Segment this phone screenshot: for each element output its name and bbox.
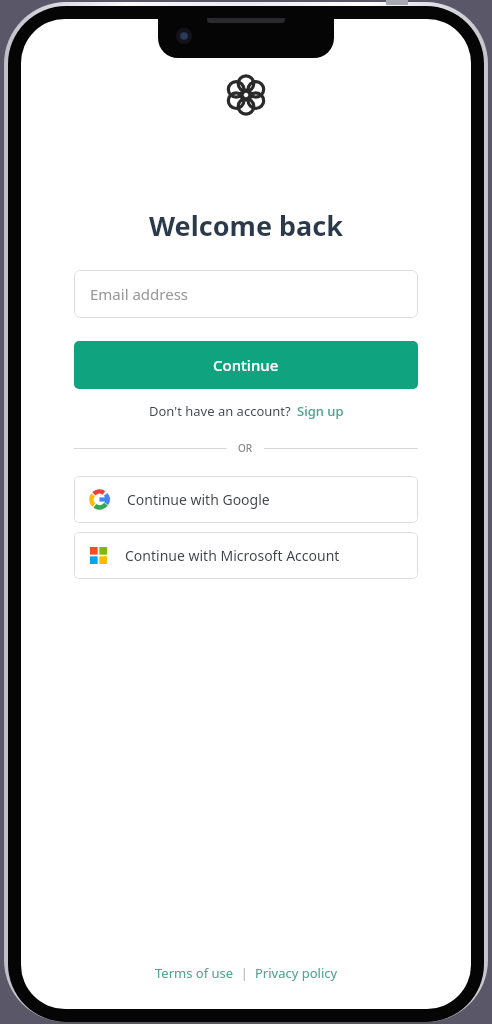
button[interactable]: Continue bbox=[74, 341, 418, 389]
staticText: Continue bbox=[213, 355, 279, 375]
staticText: Privacy policy bbox=[255, 964, 338, 982]
staticText: Welcome back bbox=[149, 207, 343, 244]
staticText: Continue with Microsoft Account bbox=[125, 546, 340, 565]
button[interactable]: Privacy policy bbox=[255, 964, 338, 982]
button[interactable]: Terms of use bbox=[155, 964, 234, 982]
button[interactable]: Sign up bbox=[297, 402, 344, 420]
button[interactable]: Email address bbox=[74, 270, 418, 318]
button[interactable]: Continue with Microsoft Account bbox=[74, 532, 418, 579]
staticText: OR bbox=[238, 441, 253, 455]
staticText: Continue with Google bbox=[127, 490, 270, 509]
staticText: Email address bbox=[90, 284, 189, 304]
staticText: Terms of use bbox=[155, 964, 234, 982]
other: OpenAI logo bbox=[227, 76, 265, 114]
button[interactable]: Continue with Google bbox=[74, 476, 418, 523]
staticText: Sign up bbox=[297, 402, 344, 420]
staticText: Don't have an account? bbox=[149, 402, 291, 420]
staticText: | bbox=[234, 964, 255, 982]
